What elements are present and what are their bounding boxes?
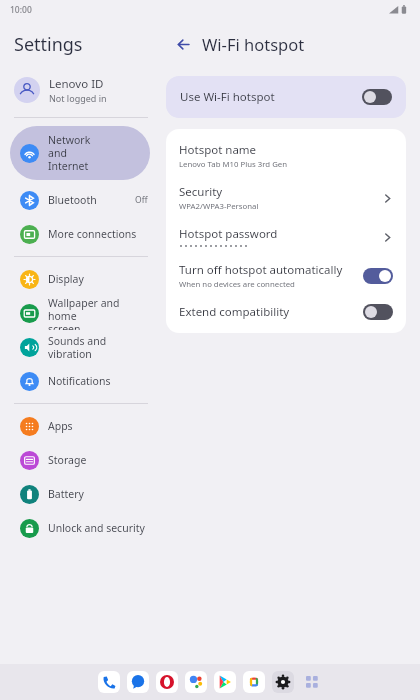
button[interactable]: Hotspot password <box>166 219 406 255</box>
staticText: Wi-Fi hotspot <box>202 33 305 55</box>
button[interactable]: Bluetooth <box>0 183 160 217</box>
staticText: Lenovo Tab M10 Plus 3rd Gen <box>179 159 288 170</box>
button[interactable]: Wallpaper and home screen <box>0 296 160 330</box>
staticText: More connections <box>48 227 148 241</box>
staticText: Battery <box>48 487 148 501</box>
button[interactable]: Unlock and security <box>0 511 160 545</box>
button[interactable]: Settings <box>272 671 294 693</box>
button[interactable]: Use Wi-Fi hotspot <box>166 76 406 118</box>
button[interactable]: Network and Internet <box>10 126 150 180</box>
button[interactable]: All apps <box>301 671 323 693</box>
staticText: Network and Internet <box>48 133 91 173</box>
button[interactable]: Play Store <box>214 671 236 693</box>
staticText: Lenovo ID <box>49 76 104 92</box>
button[interactable]: Notifications <box>0 364 160 398</box>
staticText: Hotspot password <box>179 226 278 242</box>
button[interactable]: Phone <box>98 671 120 693</box>
staticText: Notifications <box>48 374 148 388</box>
staticText: Use Wi-Fi hotspot <box>180 89 275 105</box>
button[interactable]: Off <box>363 304 393 320</box>
button[interactable]: Sounds and vibration <box>0 330 160 364</box>
button[interactable]: Off <box>362 89 392 105</box>
button[interactable]: On <box>363 268 393 284</box>
button[interactable]: Back <box>170 31 196 57</box>
staticText: When no devices are connected <box>179 279 295 290</box>
button[interactable]: Hotspot name <box>166 135 406 177</box>
staticText: Bluetooth <box>48 193 135 207</box>
button[interactable]: Apps <box>0 409 160 443</box>
button[interactable]: Lenovo ID <box>0 68 160 112</box>
button[interactable]: Photos <box>243 671 265 693</box>
button[interactable]: Battery <box>0 477 160 511</box>
button[interactable]: Security <box>166 177 406 219</box>
button[interactable]: Opera <box>156 671 178 693</box>
staticText: Security <box>179 184 223 200</box>
button[interactable]: Messages <box>127 671 149 693</box>
button[interactable]: Display <box>0 262 160 296</box>
staticText: Extend compatibility <box>179 304 290 320</box>
staticText: Wallpaper and home screen <box>48 296 148 330</box>
staticText: Sounds and vibration <box>48 334 148 361</box>
staticText: Storage <box>48 453 148 467</box>
staticText: Apps <box>48 419 148 433</box>
button[interactable]: More connections <box>0 217 160 251</box>
staticText: Unlock and security <box>48 521 148 535</box>
staticText: Not logged in <box>49 92 107 104</box>
staticText: Display <box>48 272 148 286</box>
staticText: Turn off hotspot automatically <box>179 262 343 278</box>
button[interactable]: Storage <box>0 443 160 477</box>
staticText: WPA2/WPA3-Personal <box>179 201 259 212</box>
button[interactable]: Google Assistant <box>185 671 207 693</box>
staticText: Hotspot name <box>179 142 257 158</box>
staticText: 10:00 <box>10 4 32 16</box>
button[interactable]: Extend compatibility <box>166 297 406 327</box>
button[interactable]: Turn off hotspot automatically <box>166 255 406 297</box>
staticText: Settings <box>14 32 83 57</box>
staticText: Off <box>135 194 148 206</box>
